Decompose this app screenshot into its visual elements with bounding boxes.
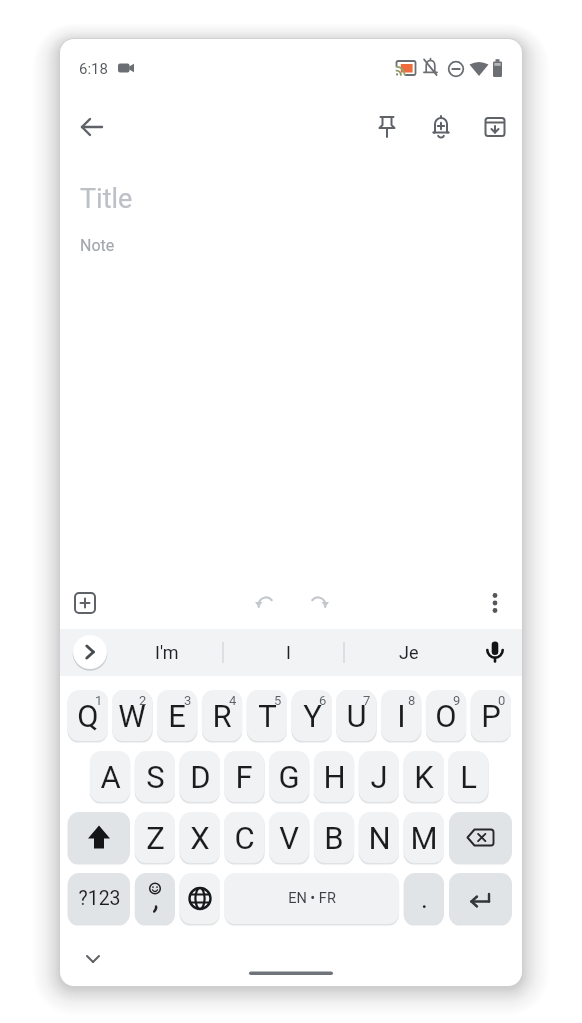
staticText: F <box>235 759 253 795</box>
button[interactable]: V <box>269 812 309 863</box>
staticText: Q <box>77 698 99 734</box>
button[interactable]: A <box>90 751 130 802</box>
staticText: 2 <box>139 693 147 708</box>
button[interactable]: I'm <box>122 630 212 674</box>
staticText: 9 <box>453 693 461 708</box>
button[interactable]: I <box>381 690 421 741</box>
button[interactable] <box>68 812 130 863</box>
button[interactable]: X <box>180 812 220 863</box>
staticText: C <box>234 820 255 856</box>
staticText: N <box>368 820 391 856</box>
staticText: 3 <box>184 693 192 708</box>
staticText: O <box>435 698 457 734</box>
staticText: EN • FR <box>288 890 336 907</box>
button[interactable] <box>475 107 515 147</box>
staticText: 6 <box>319 693 327 708</box>
button[interactable]: R <box>202 690 242 741</box>
button[interactable]: EN • FR <box>224 873 399 924</box>
staticText: Z <box>146 820 165 856</box>
staticText: Title <box>80 183 133 215</box>
button[interactable]: Z <box>135 812 175 863</box>
staticText: Note <box>80 236 115 255</box>
staticText: V <box>279 820 299 856</box>
button[interactable]: H <box>314 751 354 802</box>
button[interactable]: G <box>269 751 309 802</box>
staticText: Y <box>303 698 322 734</box>
staticText: U <box>346 698 367 734</box>
button[interactable]: L <box>448 751 488 802</box>
button[interactable] <box>73 635 107 669</box>
staticText: P <box>481 698 501 734</box>
staticText: A <box>100 759 121 795</box>
staticText: 5 <box>274 693 282 708</box>
button[interactable] <box>477 634 513 670</box>
button[interactable]: D <box>180 751 220 802</box>
staticText: D <box>190 759 211 795</box>
staticText: X <box>190 820 210 856</box>
button[interactable] <box>477 585 513 621</box>
button[interactable]: C <box>224 812 264 863</box>
button[interactable]: K <box>404 751 444 802</box>
staticText: K <box>414 759 434 795</box>
button[interactable]: P <box>471 690 511 741</box>
staticText: I <box>397 698 406 734</box>
button[interactable]: Y <box>292 690 332 741</box>
button[interactable]: B <box>314 812 354 863</box>
staticText: S <box>146 759 165 795</box>
button[interactable]: ?123 <box>68 873 130 924</box>
button[interactable]: . <box>404 873 444 924</box>
staticText: L <box>460 759 477 795</box>
staticText: H <box>323 759 346 795</box>
staticText: 7 <box>363 693 371 708</box>
button[interactable] <box>421 107 461 147</box>
button[interactable]: E <box>157 690 197 741</box>
staticText: 1 <box>95 693 103 708</box>
button[interactable]: M <box>404 812 444 863</box>
staticText: 4 <box>229 693 237 708</box>
staticText: R <box>212 698 232 734</box>
staticText: I <box>286 642 291 663</box>
button[interactable]: Q <box>68 690 108 741</box>
staticText: W <box>118 698 146 734</box>
button[interactable] <box>367 107 407 147</box>
staticText: I'm <box>155 642 179 663</box>
staticText: 8 <box>408 693 416 708</box>
button[interactable]: I <box>243 630 333 674</box>
button[interactable] <box>300 585 336 621</box>
staticText: Je <box>399 642 419 663</box>
button[interactable] <box>135 873 175 924</box>
button[interactable] <box>449 812 512 863</box>
staticText: T <box>258 698 277 734</box>
button[interactable]: N <box>359 812 399 863</box>
staticText: G <box>278 759 300 795</box>
button[interactable] <box>67 585 103 621</box>
staticText: J <box>370 759 388 795</box>
button[interactable] <box>248 585 284 621</box>
button[interactable]: F <box>224 751 264 802</box>
staticText: ?123 <box>78 887 121 910</box>
staticText: E <box>168 698 186 734</box>
button[interactable] <box>72 107 112 147</box>
button[interactable]: S <box>135 751 175 802</box>
button[interactable]: U <box>336 690 376 741</box>
staticText: . <box>421 884 428 914</box>
button[interactable]: Je <box>364 630 454 674</box>
staticText: M <box>410 820 438 856</box>
button[interactable]: T <box>247 690 287 741</box>
staticText: B <box>324 820 344 856</box>
button[interactable]: J <box>359 751 399 802</box>
button[interactable]: W <box>112 690 152 741</box>
button[interactable] <box>449 873 512 924</box>
button[interactable] <box>180 873 220 924</box>
staticText: 6:18 <box>79 60 108 78</box>
button[interactable]: O <box>426 690 466 741</box>
staticText: 0 <box>498 693 506 708</box>
